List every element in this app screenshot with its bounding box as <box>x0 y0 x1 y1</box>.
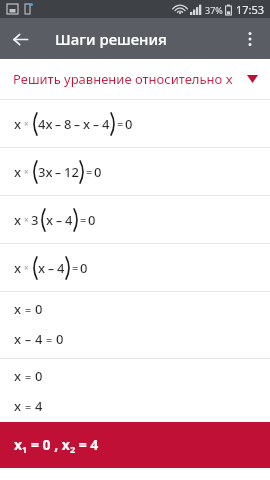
staticText: – <box>25 331 32 347</box>
staticText: × <box>24 166 29 177</box>
staticText: – <box>93 116 100 132</box>
staticText: = <box>117 116 124 131</box>
staticText: Шаги решения <box>55 29 167 49</box>
staticText: 0 <box>35 300 43 318</box>
staticText: – <box>55 116 62 132</box>
staticText: = <box>25 369 32 384</box>
staticText: x <box>14 259 22 277</box>
button[interactable]: x <box>0 244 270 291</box>
staticText: × <box>24 118 29 129</box>
button[interactable]: Решить уравнение относительно x <box>0 59 270 99</box>
staticText: 3 <box>31 211 39 229</box>
staticText: x <box>14 397 22 415</box>
staticText: = <box>25 399 32 414</box>
staticText: x <box>14 115 22 133</box>
staticText: x <box>38 259 46 277</box>
staticText: 0 <box>88 211 96 229</box>
button[interactable]: Ещё <box>230 19 270 59</box>
staticText: 4 <box>35 397 43 415</box>
button[interactable]: x <box>0 292 270 358</box>
staticText: 4x <box>38 115 53 133</box>
staticText: = <box>86 164 93 179</box>
staticText: 3x <box>38 163 53 181</box>
staticText: x <box>46 211 54 229</box>
staticText: × <box>24 262 29 273</box>
staticText: x <box>14 300 22 318</box>
staticText: 4 <box>57 259 65 277</box>
staticText: = <box>80 212 87 227</box>
staticText: 12 <box>64 163 79 181</box>
staticText: x <box>14 330 22 348</box>
staticText: – <box>56 212 63 228</box>
staticText: 4 <box>35 330 43 348</box>
staticText: = <box>46 332 53 347</box>
staticText: = <box>72 260 79 275</box>
button[interactable]: x <box>0 196 270 243</box>
staticText: 4 <box>65 211 73 229</box>
staticText: – <box>74 116 81 132</box>
staticText: – <box>48 260 55 276</box>
staticText: × <box>24 214 29 225</box>
staticText: 0 <box>94 163 102 181</box>
staticText: 8 <box>64 115 72 133</box>
staticText: 37% <box>205 4 223 16</box>
staticText: – <box>55 164 62 180</box>
staticText: Решить уравнение относительно x <box>13 70 233 88</box>
staticText: x1 = 0 , x2 = 4 <box>14 435 99 456</box>
staticText: 17:53 <box>236 2 265 17</box>
staticText: x <box>83 115 91 133</box>
button[interactable]: x1 = 0 , x2 = 4 <box>0 422 270 468</box>
staticText: 0 <box>80 259 88 277</box>
button[interactable]: x <box>0 359 270 422</box>
staticText: x <box>14 367 22 385</box>
staticText: 0 <box>56 330 64 348</box>
button[interactable]: x <box>0 148 270 195</box>
staticText: 4 <box>102 115 110 133</box>
button[interactable]: Назад <box>0 19 40 59</box>
staticText: x <box>14 211 22 229</box>
button[interactable]: x <box>0 100 270 147</box>
staticText: = <box>25 302 32 317</box>
staticText: x <box>14 163 22 181</box>
staticText: 0 <box>35 367 43 385</box>
staticText: 0 <box>125 115 133 133</box>
